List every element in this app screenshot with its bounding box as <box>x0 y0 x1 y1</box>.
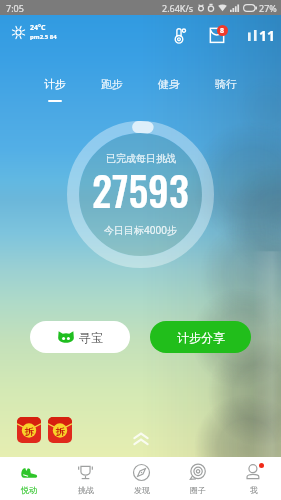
button[interactable]: Weather detail <box>165 20 195 50</box>
button[interactable]: 发现 <box>113 457 169 500</box>
staticText: 计步分享 <box>177 330 225 345</box>
staticText: 圈子 <box>190 485 206 495</box>
staticText: 27593 <box>92 160 189 219</box>
staticText: 骑行 <box>215 77 237 91</box>
staticText: 已完成每日挑战 <box>106 152 176 165</box>
staticText: 2.64K/s <box>162 2 194 14</box>
button[interactable]: 寻宝 <box>30 321 130 353</box>
staticText: 健身 <box>158 77 180 91</box>
button[interactable]: 挑战 <box>57 457 113 500</box>
staticText: 27% <box>259 2 277 14</box>
staticText: 拆 <box>56 426 65 437</box>
staticText: 7:05 <box>6 2 24 14</box>
button[interactable]: 11 <box>244 20 280 50</box>
staticText: 8 <box>220 26 225 36</box>
button[interactable]: 跑步 <box>83 77 140 102</box>
button[interactable]: 计步 <box>27 77 83 102</box>
staticText: 悦动 <box>21 485 37 495</box>
staticText: 11 <box>259 26 276 45</box>
staticText: 24°C <box>30 23 46 33</box>
staticText: 发现 <box>134 485 150 495</box>
staticText: 今日目标4000步 <box>104 223 177 237</box>
staticText: 拆 <box>25 426 34 437</box>
button[interactable]: 我 <box>225 457 281 500</box>
button[interactable]: 圈子 <box>169 457 225 500</box>
button[interactable]: Open red packet <box>48 417 72 443</box>
staticText: 计步 <box>44 77 66 91</box>
staticText: 挑战 <box>78 485 94 495</box>
staticText: 寻宝 <box>79 330 103 345</box>
button[interactable]: Expand <box>130 432 152 448</box>
button[interactable]: 计步分享 <box>150 321 251 353</box>
button[interactable]: Open red packet <box>17 417 41 443</box>
button[interactable]: 悦动 <box>0 457 57 500</box>
button[interactable]: 健身 <box>140 77 197 102</box>
staticText: 跑步 <box>101 77 123 91</box>
button[interactable]: 骑行 <box>197 77 254 102</box>
button[interactable]: Messages <box>202 20 232 50</box>
staticText: 我 <box>250 485 258 495</box>
staticText: pm2.5 84 <box>30 33 57 41</box>
button[interactable]: 24°C <box>8 20 60 44</box>
